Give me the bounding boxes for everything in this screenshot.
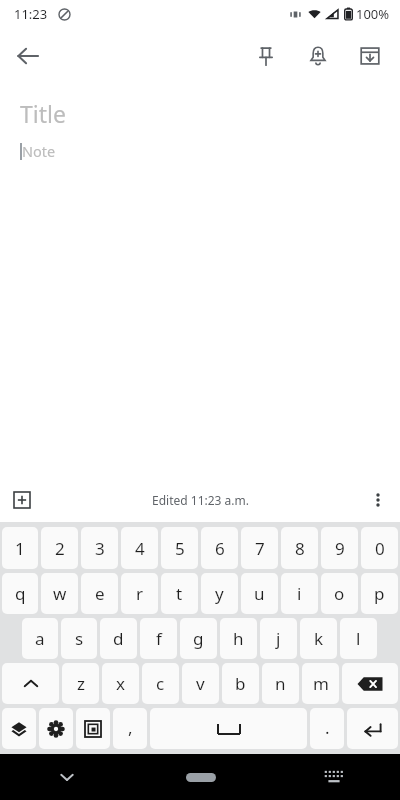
- button[interactable]: Hide keyboard: [0, 754, 134, 800]
- staticText: a: [35, 627, 45, 650]
- button[interactable]: Space: [150, 708, 307, 749]
- staticText: i: [297, 582, 302, 605]
- button[interactable]: Shift: [2, 663, 59, 704]
- button[interactable]: u: [241, 573, 278, 614]
- button[interactable]: 5: [161, 527, 198, 569]
- button[interactable]: Enter: [347, 708, 398, 749]
- button[interactable]: x: [102, 663, 139, 704]
- button[interactable]: Back: [0, 28, 56, 84]
- staticText: h: [233, 627, 244, 650]
- button[interactable]: Emoji: [76, 708, 110, 749]
- button[interactable]: 2: [41, 527, 78, 569]
- button[interactable]: Backspace: [342, 663, 398, 704]
- staticText: g: [193, 627, 204, 650]
- staticText: 11:23: [14, 5, 48, 23]
- button[interactable]: a: [22, 618, 58, 659]
- button[interactable]: Title: [20, 98, 400, 129]
- button[interactable]: More options: [356, 478, 400, 522]
- button[interactable]: Switch keyboard: [267, 754, 400, 800]
- button[interactable]: Archive: [344, 30, 396, 82]
- button[interactable]: g: [180, 618, 217, 659]
- button[interactable]: v: [182, 663, 219, 704]
- button[interactable]: t: [161, 573, 198, 614]
- staticText: f: [156, 627, 162, 650]
- button[interactable]: j: [260, 618, 297, 659]
- staticText: ,: [128, 716, 133, 739]
- staticText: w: [53, 582, 67, 605]
- staticText: e: [95, 582, 105, 605]
- button[interactable]: l: [340, 618, 377, 659]
- button[interactable]: 6: [201, 527, 238, 569]
- staticText: t: [176, 582, 183, 605]
- button[interactable]: q: [2, 573, 38, 614]
- staticText: n: [275, 672, 286, 695]
- button[interactable]: Pin: [240, 30, 292, 82]
- button[interactable]: 4: [121, 527, 158, 569]
- button[interactable]: b: [222, 663, 259, 704]
- staticText: d: [113, 627, 124, 650]
- button[interactable]: i: [281, 573, 318, 614]
- staticText: Note: [22, 141, 56, 161]
- staticText: b: [235, 672, 246, 695]
- button[interactable]: d: [100, 618, 137, 659]
- staticText: c: [156, 672, 165, 695]
- staticText: m: [313, 672, 329, 695]
- button[interactable]: Layers: [2, 708, 36, 749]
- staticText: 100%: [356, 5, 390, 23]
- button[interactable]: Add: [0, 478, 44, 522]
- staticText: p: [374, 582, 385, 605]
- staticText: 3: [95, 537, 105, 560]
- button[interactable]: Note: [20, 141, 400, 161]
- button[interactable]: r: [121, 573, 158, 614]
- button[interactable]: z: [62, 663, 99, 704]
- staticText: r: [136, 582, 144, 605]
- button[interactable]: 8: [281, 527, 318, 569]
- staticText: u: [254, 582, 265, 605]
- button[interactable]: w: [41, 573, 78, 614]
- button[interactable]: m: [302, 663, 339, 704]
- staticText: j: [276, 627, 281, 650]
- button[interactable]: y: [201, 573, 238, 614]
- staticText: o: [334, 582, 345, 605]
- button[interactable]: ,: [113, 708, 147, 749]
- staticText: 7: [255, 537, 265, 560]
- staticText: s: [75, 627, 84, 650]
- button[interactable]: p: [361, 573, 398, 614]
- staticText: v: [196, 672, 205, 695]
- button[interactable]: Reminder: [292, 30, 344, 82]
- staticText: .: [325, 716, 330, 739]
- button[interactable]: 0: [361, 527, 398, 569]
- staticText: 9: [335, 537, 345, 560]
- button[interactable]: e: [81, 573, 118, 614]
- button[interactable]: n: [262, 663, 299, 704]
- staticText: l: [356, 627, 361, 650]
- staticText: 6: [215, 537, 225, 560]
- staticText: 8: [295, 537, 305, 560]
- button[interactable]: f: [140, 618, 177, 659]
- button[interactable]: 3: [81, 527, 118, 569]
- staticText: 0: [375, 537, 385, 560]
- button[interactable]: s: [61, 618, 97, 659]
- staticText: 2: [55, 537, 65, 560]
- staticText: x: [116, 672, 125, 695]
- button[interactable]: Settings: [39, 708, 73, 749]
- button[interactable]: 1: [2, 527, 38, 569]
- button[interactable]: k: [300, 618, 337, 659]
- button[interactable]: c: [142, 663, 179, 704]
- button[interactable]: Home: [134, 754, 267, 800]
- staticText: Title: [20, 98, 66, 129]
- button[interactable]: 7: [241, 527, 278, 569]
- staticText: y: [215, 582, 224, 605]
- staticText: Edited 11:23 a.m.: [152, 492, 249, 508]
- button[interactable]: o: [321, 573, 358, 614]
- staticText: k: [314, 627, 324, 650]
- staticText: q: [15, 582, 26, 605]
- staticText: 5: [175, 537, 185, 560]
- staticText: 4: [135, 537, 145, 560]
- staticText: 1: [15, 537, 25, 560]
- button[interactable]: h: [220, 618, 257, 659]
- button[interactable]: .: [310, 708, 344, 749]
- button[interactable]: 9: [321, 527, 358, 569]
- staticText: z: [77, 672, 85, 695]
